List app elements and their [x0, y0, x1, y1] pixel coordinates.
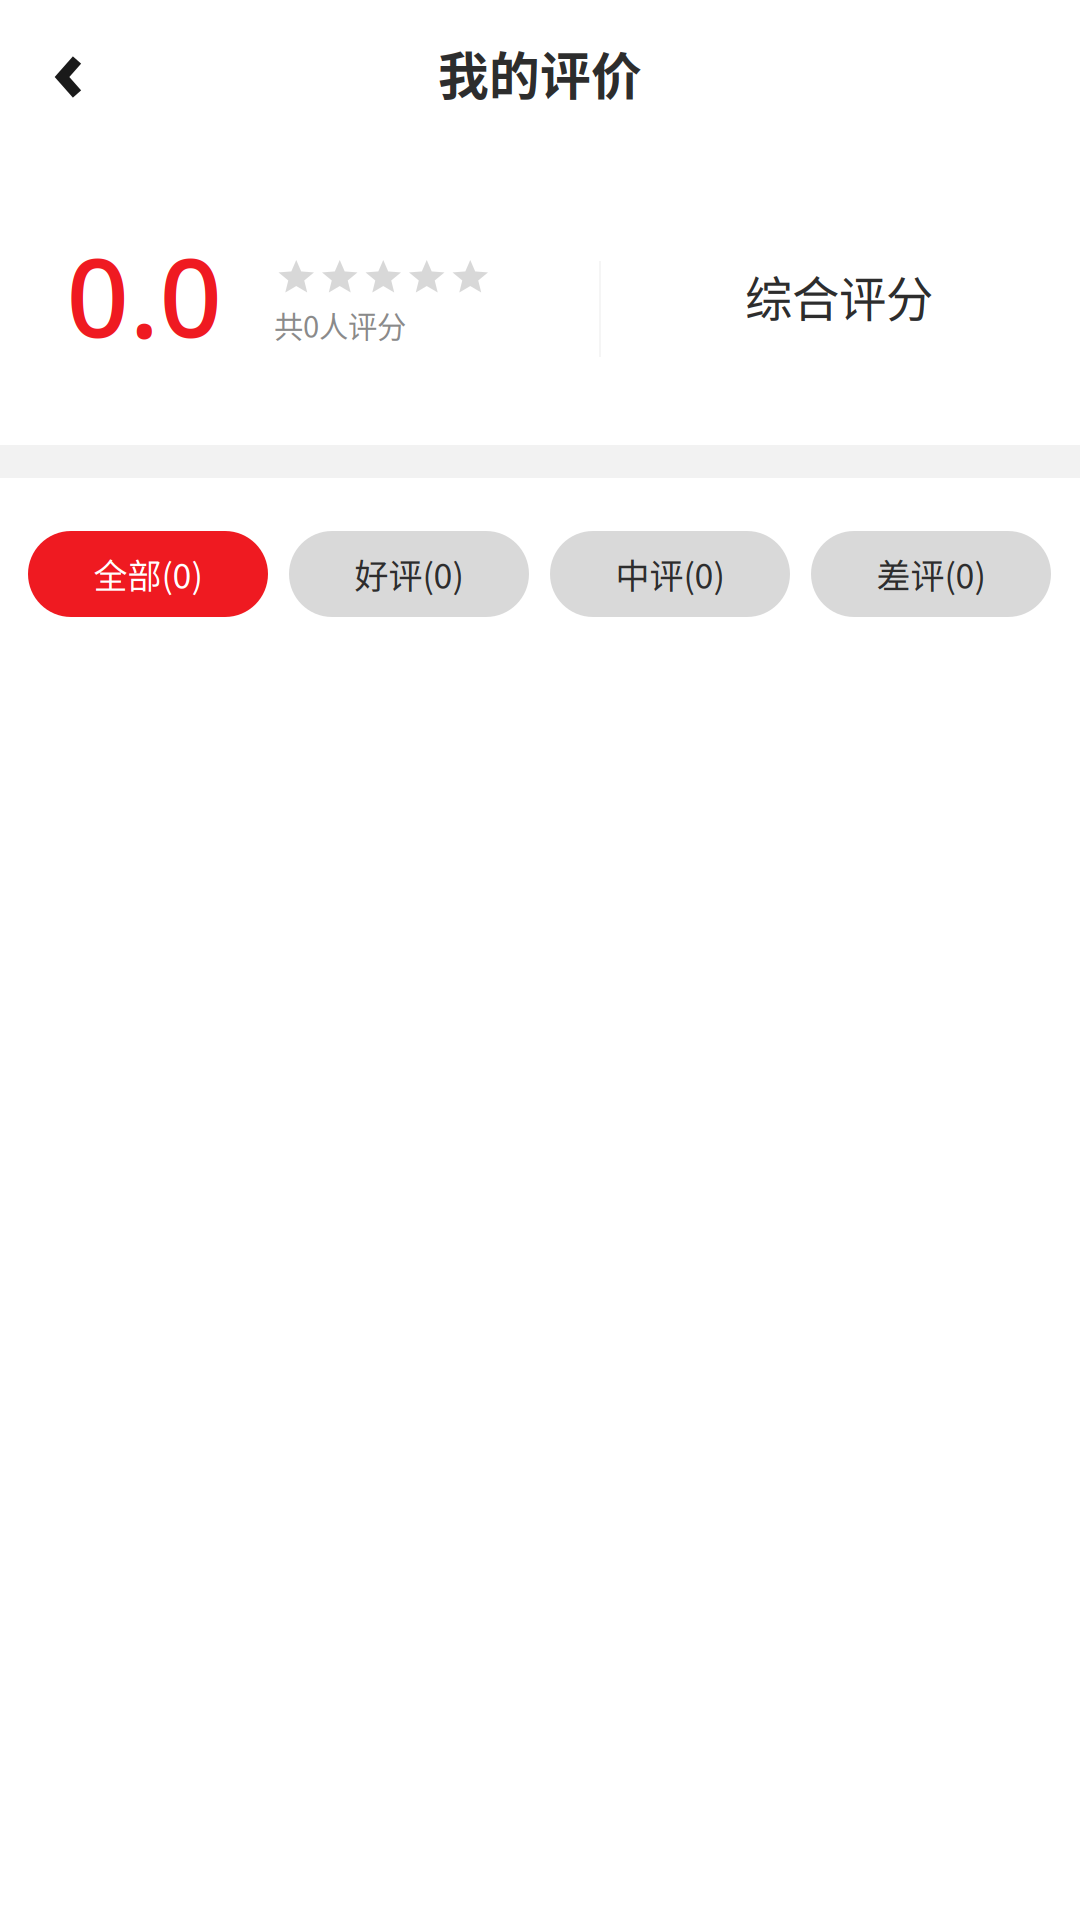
button[interactable]: 全部(0) [28, 531, 268, 617]
staticText: 差评(0) [876, 549, 985, 599]
button[interactable]: 差评(0) [811, 531, 1051, 617]
button[interactable]: Back [0, 0, 139, 150]
staticText: 中评(0) [615, 549, 724, 599]
staticText: 我的评价 [438, 36, 642, 110]
button[interactable]: 好评(0) [289, 531, 529, 617]
staticText: 好评(0) [354, 549, 463, 599]
staticText: 0.0 [66, 220, 222, 369]
staticText: 全部(0) [93, 549, 202, 599]
button[interactable]: 中评(0) [550, 531, 790, 617]
staticText: 综合评分 [745, 262, 933, 330]
staticText: 共0人评分 [274, 304, 406, 346]
